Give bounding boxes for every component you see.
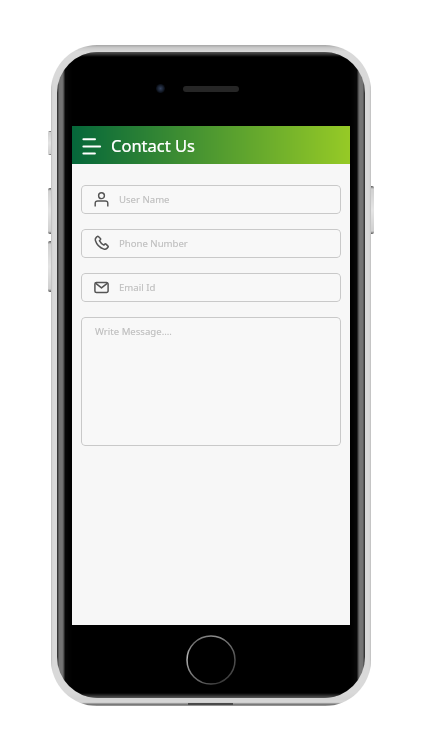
- button[interactable]: Home: [186, 635, 236, 685]
- staticText: Phone Number: [119, 237, 188, 250]
- button[interactable]: Phone Number: [81, 229, 341, 258]
- button[interactable]: User Name: [81, 185, 341, 214]
- button[interactable]: Open navigation menu: [77, 132, 101, 156]
- staticText: Write Message....: [95, 325, 172, 338]
- staticText: Email Id: [119, 281, 156, 294]
- button[interactable]: Write Message....: [81, 317, 341, 446]
- staticText: Contact Us: [111, 134, 195, 156]
- button[interactable]: Email Id: [81, 273, 341, 302]
- staticText: User Name: [119, 193, 170, 206]
